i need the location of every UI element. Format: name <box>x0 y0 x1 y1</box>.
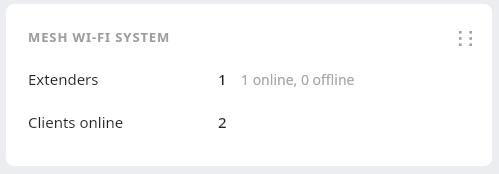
button[interactable]: Reorder card <box>452 25 478 51</box>
staticText: Extenders <box>28 69 99 89</box>
staticText: 2 <box>218 112 227 132</box>
button[interactable]: Clients online <box>6 110 492 134</box>
staticText: 1 <box>218 69 227 89</box>
staticText: 1 online, 0 offline <box>241 70 355 89</box>
staticText: Clients online <box>28 112 124 132</box>
button[interactable]: MESH WI-FI SYSTEM <box>6 4 492 166</box>
button[interactable]: Extenders <box>6 67 492 91</box>
staticText: MESH WI-FI SYSTEM <box>28 28 171 46</box>
